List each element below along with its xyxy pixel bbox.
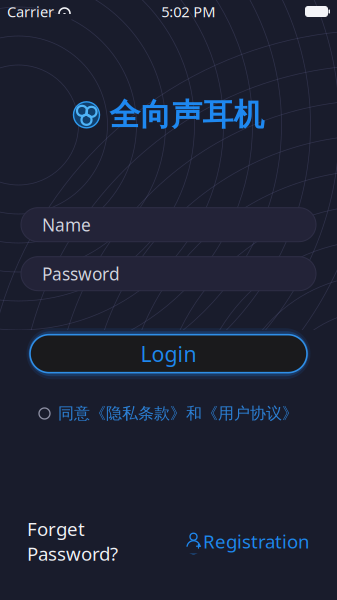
button[interactable]: Login — [30, 330, 307, 378]
staticText: Registration — [203, 529, 310, 554]
staticText: 同意《隐私条款》和《用户协议》 — [58, 404, 298, 423]
button[interactable]: 同意《隐私条款》和《用户协议》 — [39, 400, 298, 427]
staticText: Login — [140, 339, 196, 368]
staticText: Password — [42, 262, 120, 285]
button[interactable]: Forget Password? — [27, 512, 118, 570]
staticText: Name — [42, 213, 91, 236]
staticText: Forget Password? — [27, 516, 118, 566]
staticText: 5:02 PM — [161, 2, 215, 21]
button[interactable]: Registration — [186, 525, 310, 558]
staticText: Carrier — [7, 2, 54, 21]
staticText: 全向声耳机 — [109, 96, 264, 134]
